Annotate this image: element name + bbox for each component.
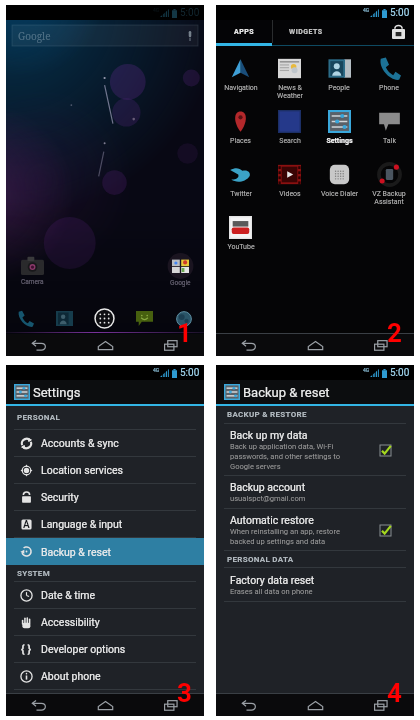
staticText: BACKUP & RESTORE <box>227 410 307 419</box>
staticText: Settings <box>33 385 81 400</box>
button[interactable]: Twitter <box>216 161 265 214</box>
button[interactable]: Phone <box>364 55 414 108</box>
staticText: Twitter <box>230 190 252 198</box>
button[interactable]: Home <box>282 694 348 716</box>
button[interactable]: People <box>314 55 364 108</box>
staticText: Voice Dialer <box>321 190 358 198</box>
button[interactable]: Home <box>72 694 138 716</box>
button[interactable]: Google <box>169 256 192 287</box>
button[interactable]: Toggle Back up my data <box>372 437 398 463</box>
staticText: When reinstalling an app, restore backed… <box>230 527 340 546</box>
staticText: 5:00 <box>390 7 410 19</box>
button[interactable]: Backup & reset <box>216 380 414 404</box>
button[interactable]: Places <box>216 108 265 161</box>
staticText: Accounts & sync <box>41 437 119 449</box>
button[interactable]: Browser <box>164 304 204 333</box>
staticText: Talk <box>383 137 396 145</box>
staticText: Camera <box>21 278 44 286</box>
other: Voice search <box>188 31 192 41</box>
staticText: Developer options <box>41 643 126 655</box>
button[interactable]: VZ Backup Assistant <box>364 161 414 214</box>
button[interactable]: Backup account <box>216 476 414 508</box>
staticText: Back up my data <box>230 429 308 441</box>
staticText: Phone <box>379 84 399 92</box>
staticText: Date & time <box>41 589 96 601</box>
staticText: About phone <box>41 670 101 682</box>
staticText: Accessibility <box>41 616 100 628</box>
button[interactable]: Recents <box>348 694 414 716</box>
button[interactable]: A <box>6 511 204 537</box>
button[interactable]: Security <box>6 484 204 510</box>
button[interactable]: Back <box>216 334 282 356</box>
staticText: 4G <box>363 367 370 373</box>
button[interactable]: Recents <box>348 334 414 356</box>
button[interactable]: APPS <box>216 20 272 43</box>
button[interactable]: Google <box>12 25 198 46</box>
staticText: Videos <box>279 190 301 198</box>
button[interactable]: Location services <box>6 457 204 483</box>
button[interactable]: Search <box>265 108 314 161</box>
button[interactable]: Back <box>216 694 282 716</box>
staticText: 3 <box>177 678 192 706</box>
button[interactable]: Videos <box>265 161 314 214</box>
staticText: Backup account <box>230 481 306 493</box>
staticText: 5:00 <box>390 367 410 379</box>
staticText: Google <box>170 279 191 287</box>
staticText: 4G <box>363 7 370 13</box>
button[interactable]: { } <box>6 636 204 662</box>
staticText: Erases all data on phone <box>230 587 313 596</box>
staticText: Security <box>41 491 79 503</box>
staticText: SYSTEM <box>17 569 50 578</box>
button[interactable]: Factory data reset <box>216 568 414 601</box>
button[interactable]: Camera <box>21 256 44 286</box>
staticText: 5:00 <box>180 367 200 379</box>
button[interactable]: Phone <box>6 304 45 333</box>
button[interactable]: WIDGETS <box>273 20 339 43</box>
button[interactable]: Recents <box>138 694 204 716</box>
button[interactable]: Recents <box>138 334 204 356</box>
staticText: 5:00 <box>180 7 200 19</box>
button[interactable]: About phone <box>6 663 204 689</box>
button[interactable]: Back <box>6 694 72 716</box>
staticText: { } <box>21 643 32 656</box>
button[interactable]: Settings <box>314 108 364 161</box>
button[interactable]: Back <box>6 334 72 356</box>
staticText: Automatic restore <box>230 514 314 526</box>
staticText: Backup & reset <box>41 546 111 558</box>
button[interactable]: Backup & reset <box>6 538 204 565</box>
button[interactable]: People <box>45 304 84 333</box>
staticText: Location services <box>41 464 123 476</box>
button[interactable]: Voice Dialer <box>314 161 364 214</box>
button[interactable]: Home <box>72 334 138 356</box>
button[interactable]: Apps <box>84 304 124 333</box>
button[interactable]: Accounts & sync <box>6 430 204 456</box>
staticText: Navigation <box>224 84 258 92</box>
staticText: 4G <box>153 7 160 13</box>
staticText: A <box>23 519 30 531</box>
button[interactable]: Toggle Automatic restore <box>372 517 398 543</box>
button[interactable]: YouTube <box>216 214 265 267</box>
button[interactable]: Shop <box>382 20 414 43</box>
button[interactable]: Home <box>282 334 348 356</box>
button[interactable]: Messaging <box>124 304 164 333</box>
button[interactable]: Navigation <box>216 55 265 108</box>
staticText: PERSONAL DATA <box>227 555 294 564</box>
button[interactable]: Back up my data <box>216 424 414 475</box>
staticText: 2 <box>387 318 402 346</box>
button[interactable]: Talk <box>364 108 414 161</box>
button[interactable]: News & Weather <box>265 55 314 108</box>
staticText: Settings <box>326 137 353 145</box>
staticText: WIDGETS <box>289 28 323 36</box>
button[interactable]: Accessibility <box>6 609 204 635</box>
staticText: PERSONAL <box>17 413 61 422</box>
staticText: Search <box>279 137 301 145</box>
staticText: YouTube <box>227 243 255 251</box>
staticText: Google <box>18 29 51 43</box>
button[interactable]: Automatic restore <box>216 509 414 550</box>
button[interactable]: Date & time <box>6 582 204 608</box>
staticText: 4G <box>153 367 160 373</box>
staticText: Language & input <box>41 518 123 530</box>
staticText: Backup & reset <box>243 385 330 400</box>
staticText: Places <box>230 137 251 145</box>
staticText: Factory data reset <box>230 574 315 586</box>
